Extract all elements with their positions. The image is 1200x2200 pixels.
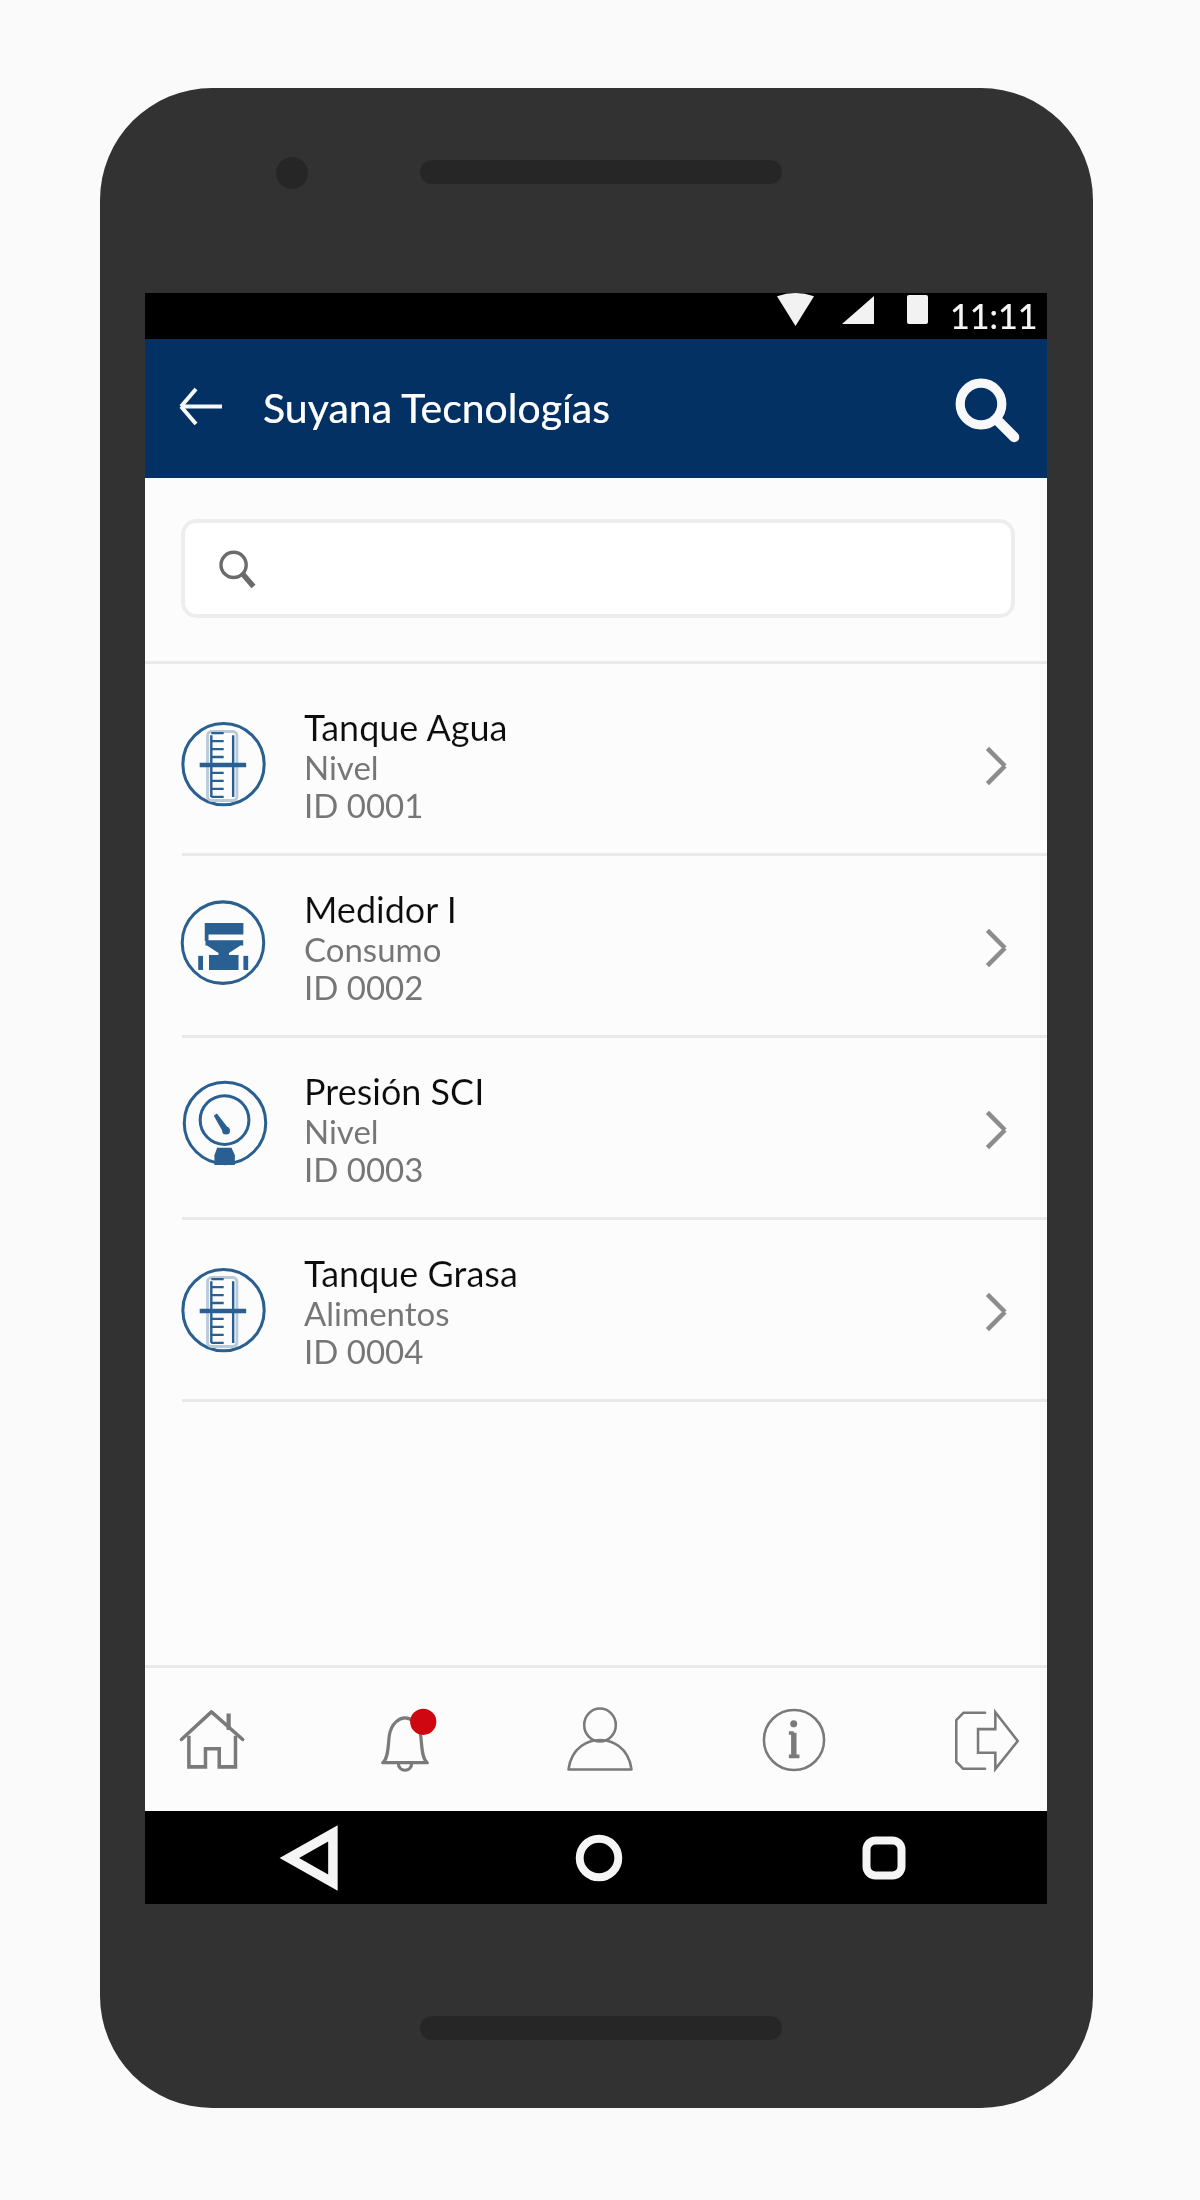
button[interactable]: Tanque Agua xyxy=(145,674,1047,853)
button[interactable]: Back xyxy=(269,1811,361,1904)
staticText: Nivel xyxy=(304,747,379,787)
staticText: ID 0002 xyxy=(304,967,424,1007)
staticText: ID 0001 xyxy=(304,785,424,825)
button[interactable]: Profile xyxy=(552,1692,648,1788)
button[interactable]: Home xyxy=(553,1811,645,1904)
button[interactable]: Home xyxy=(164,1692,260,1788)
button[interactable]: Information xyxy=(746,1692,842,1788)
button[interactable]: Search xyxy=(931,354,1031,464)
staticText: Presión SCI xyxy=(304,1069,485,1112)
button[interactable]: Back xyxy=(152,367,252,447)
button[interactable]: Notifications xyxy=(357,1692,453,1788)
staticText: Nivel xyxy=(304,1111,379,1151)
button[interactable]: Presión SCI xyxy=(145,1038,1047,1217)
button[interactable]: Log out xyxy=(939,1692,1035,1788)
button[interactable]: Search devices xyxy=(181,519,1015,618)
staticText: Consumo xyxy=(304,929,442,969)
staticText: Suyana Tecnologías xyxy=(263,383,610,432)
button[interactable]: Tanque Grasa xyxy=(145,1220,1047,1399)
staticText: ID 0003 xyxy=(304,1149,424,1189)
staticText: Tanque Grasa xyxy=(304,1251,518,1294)
staticText: Medidor I xyxy=(304,887,457,930)
button[interactable]: Medidor I xyxy=(145,856,1047,1035)
button[interactable]: Recent apps xyxy=(838,1811,930,1904)
staticText: 11:11 xyxy=(950,295,1038,336)
staticText: Tanque Agua xyxy=(304,705,508,748)
staticText: ID 0004 xyxy=(304,1331,424,1371)
staticText: Alimentos xyxy=(304,1293,450,1333)
